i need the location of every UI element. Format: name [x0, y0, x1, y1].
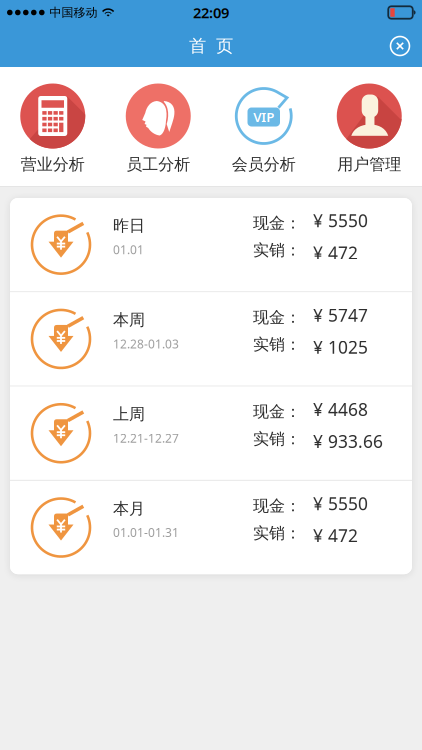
- staticText: 22:09: [193, 3, 229, 22]
- staticText: 01.01: [113, 241, 144, 257]
- staticText: ¥ 5747: [313, 303, 368, 326]
- staticText: 现金：: [253, 496, 301, 516]
- staticText: ¥ 1025: [313, 335, 368, 358]
- staticText: 会员分析: [232, 154, 296, 174]
- staticText: 上周: [113, 404, 145, 424]
- button[interactable]: 员工分析: [105, 67, 211, 187]
- staticText: 员工分析: [126, 154, 190, 174]
- staticText: ¥ 933.66: [313, 430, 383, 453]
- staticText: VIP: [253, 108, 274, 126]
- staticText: ¥ 472: [313, 241, 358, 264]
- button[interactable]: 用户管理: [316, 67, 422, 187]
- button[interactable]: Close: [383, 29, 417, 63]
- staticText: ¥ 5550: [313, 209, 368, 232]
- staticText: 首 页: [189, 35, 233, 57]
- button[interactable]: VIP: [211, 67, 316, 187]
- staticText: 实销：: [253, 240, 301, 260]
- staticText: 昨日: [113, 216, 145, 236]
- staticText: 本周: [113, 310, 145, 330]
- staticText: 中国移动: [50, 5, 98, 20]
- staticText: ¥ 4468: [313, 398, 368, 421]
- staticText: 用户管理: [337, 154, 401, 174]
- staticText: ¥ 472: [313, 524, 358, 547]
- staticText: 本月: [113, 499, 145, 518]
- button[interactable]: 本周: [10, 292, 412, 386]
- staticText: 实销：: [253, 335, 301, 354]
- staticText: 实销：: [253, 523, 301, 543]
- staticText: 12.21-12.27: [113, 430, 179, 446]
- button[interactable]: 上周: [10, 387, 412, 480]
- staticText: 实销：: [253, 429, 301, 449]
- button[interactable]: 本月: [10, 481, 412, 574]
- staticText: ¥ 5550: [313, 492, 368, 515]
- staticText: 营业分析: [21, 154, 85, 174]
- staticText: 现金：: [253, 213, 301, 233]
- button[interactable]: 昨日: [10, 198, 412, 291]
- staticText: 01.01-01.31: [113, 524, 179, 540]
- button[interactable]: 营业分析: [0, 67, 105, 187]
- staticText: 现金：: [253, 307, 301, 327]
- staticText: 12.28-01.03: [113, 336, 179, 352]
- staticText: 现金：: [253, 402, 301, 421]
